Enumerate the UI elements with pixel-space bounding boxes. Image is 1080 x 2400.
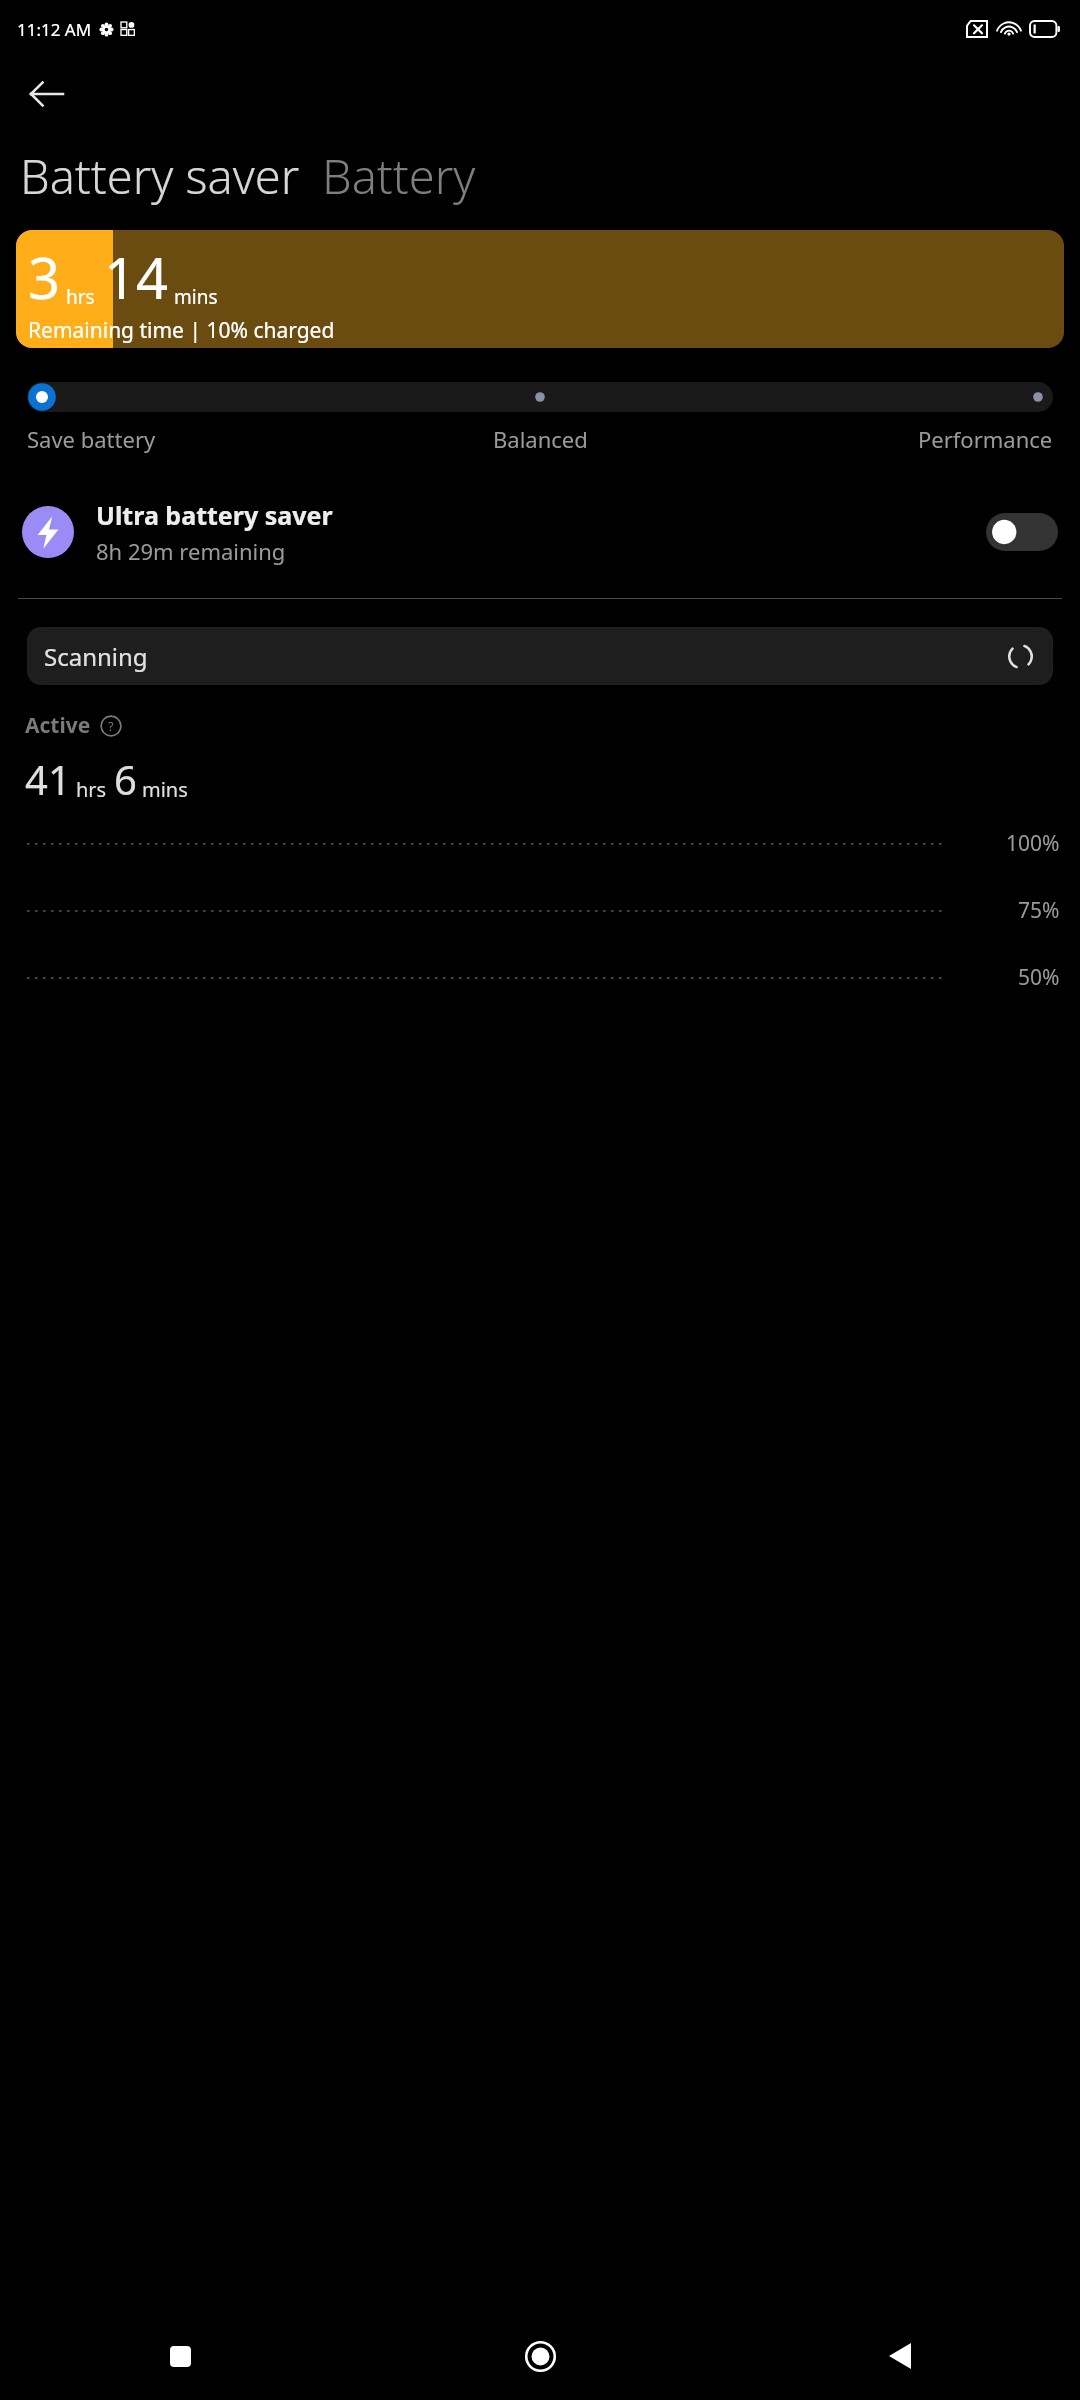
staticText: 3 bbox=[28, 239, 61, 315]
staticText: Ultra battery saver bbox=[96, 498, 333, 532]
button[interactable]: Back bbox=[720, 2312, 1080, 2400]
button[interactable]: 3 bbox=[16, 230, 1064, 348]
staticText: 100% bbox=[1006, 829, 1060, 858]
staticText: hrs bbox=[66, 284, 95, 310]
staticText: Performance bbox=[918, 424, 1053, 454]
staticText: Battery saver bbox=[20, 144, 300, 208]
button[interactable]: Battery saver bbox=[20, 144, 300, 208]
staticText: Remaining time | 10% charged bbox=[28, 316, 335, 345]
staticText: Scanning bbox=[44, 640, 148, 673]
staticText: ? bbox=[108, 717, 114, 735]
staticText: Battery bbox=[322, 144, 476, 208]
staticText: mins bbox=[174, 284, 218, 310]
button[interactable]: Ultra battery saver toggle bbox=[986, 513, 1058, 551]
staticText: 8h 29m remaining bbox=[96, 536, 286, 566]
staticText: 11:12 AM bbox=[17, 18, 92, 41]
staticText: Save battery bbox=[27, 424, 156, 454]
button[interactable]: Recents bbox=[0, 2312, 360, 2400]
staticText: mins bbox=[142, 776, 188, 803]
button[interactable]: Home bbox=[360, 2312, 720, 2400]
staticText: 41 bbox=[25, 752, 71, 806]
button[interactable]: Back bbox=[10, 58, 82, 130]
staticText: Active bbox=[25, 711, 91, 740]
staticText: hrs bbox=[76, 776, 107, 803]
staticText: 75% bbox=[1018, 896, 1060, 925]
staticText: 50% bbox=[1018, 963, 1060, 992]
staticText: 14 bbox=[104, 239, 169, 315]
button[interactable]: Scanning bbox=[27, 627, 1053, 685]
staticText: 6 bbox=[114, 752, 137, 806]
staticText: Balanced bbox=[493, 424, 588, 454]
button[interactable]: Battery mode slider bbox=[27, 382, 1053, 412]
button[interactable]: Help bbox=[100, 715, 122, 737]
button[interactable]: Battery bbox=[322, 144, 476, 208]
button[interactable]: Ultra battery saver bbox=[0, 484, 1080, 580]
